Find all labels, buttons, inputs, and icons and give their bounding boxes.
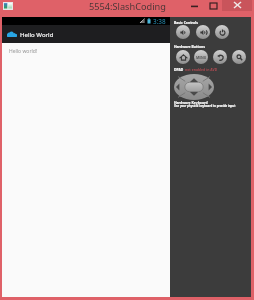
button[interactable]: Volume down (176, 25, 190, 39)
staticText: Hello world! (9, 48, 38, 55)
staticText: Use your physical keyboard to provide in… (174, 104, 236, 108)
button[interactable]: Search (232, 50, 246, 64)
staticText: 5554:SlashCoding (89, 0, 166, 12)
button[interactable]: Back (213, 50, 227, 64)
button[interactable]: Home (176, 50, 190, 64)
staticText: Basic Controls (174, 20, 198, 25)
button[interactable]: Menu (194, 50, 208, 64)
button[interactable]: Minimize (185, 0, 204, 12)
staticText: not enabled in AVD (185, 67, 218, 72)
staticText: 3:38 (153, 17, 166, 25)
button[interactable]: D-pad (174, 74, 214, 100)
staticText: Hardware Keyboard (174, 100, 208, 105)
button[interactable]: Close (222, 0, 252, 11)
button[interactable]: Power (215, 25, 229, 39)
staticText: DPAD (174, 67, 185, 72)
staticText: MENU (196, 55, 207, 60)
button[interactable]: Volume up (196, 25, 210, 39)
button[interactable]: Maximize (204, 0, 222, 12)
staticText: Hello World (20, 30, 54, 38)
staticText: Hardware Buttons (174, 44, 205, 49)
